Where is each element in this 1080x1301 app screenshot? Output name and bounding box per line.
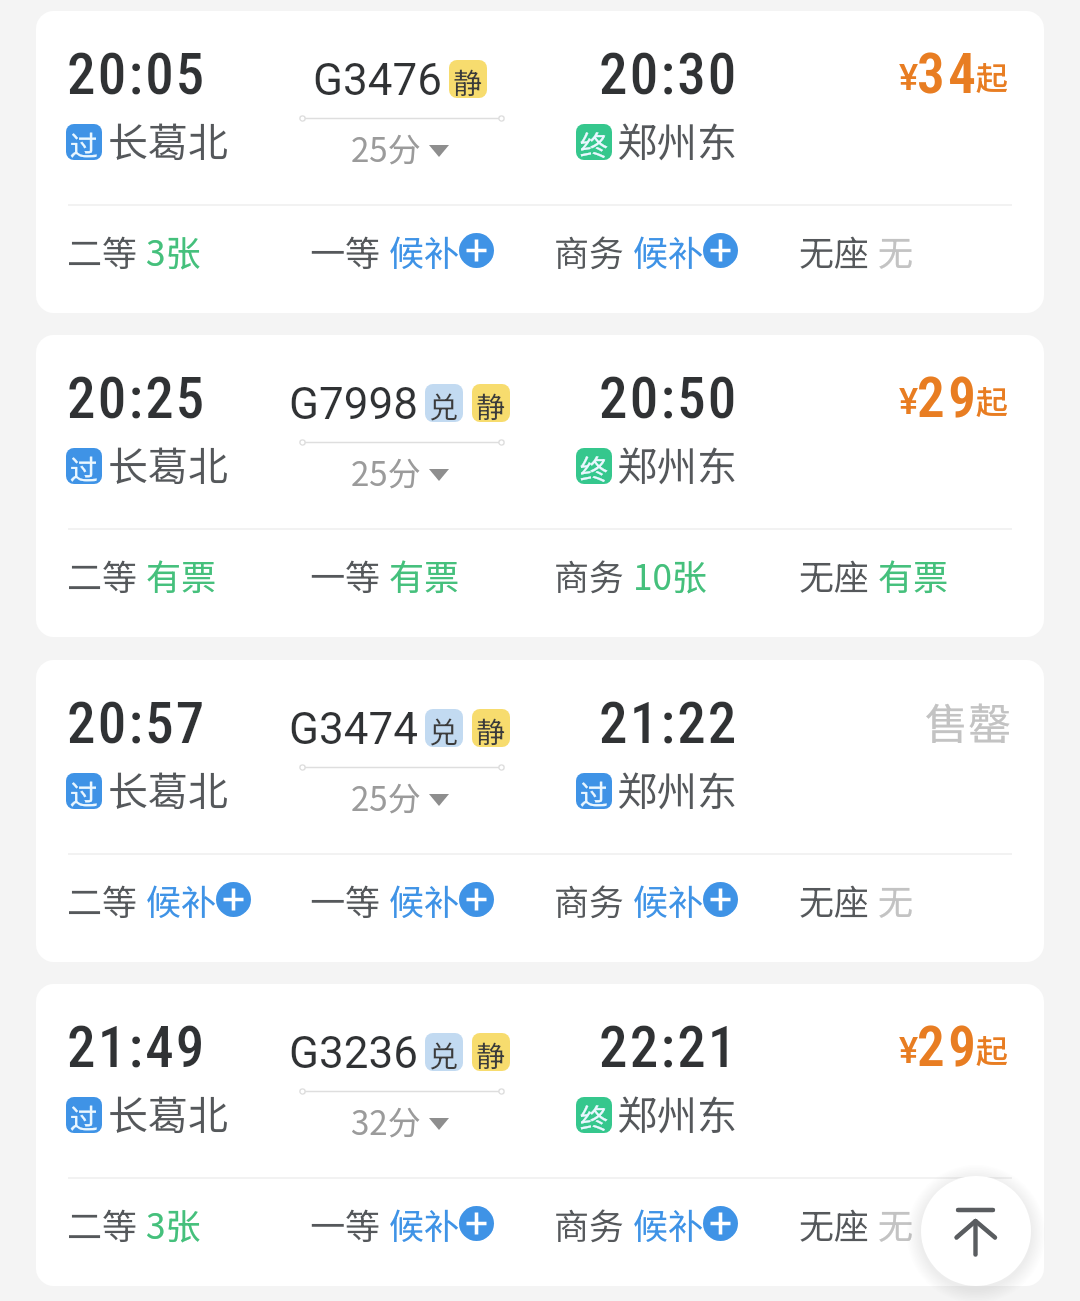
staticText: 候补 [389,874,460,925]
staticText: 25分 [351,124,421,172]
button[interactable]: Back to top [921,1176,1031,1286]
staticText: ¥ [899,1030,919,1072]
staticText: 起 [976,1026,1009,1072]
staticText: 候补 [146,874,217,925]
staticText: 售罄 [925,690,1011,752]
staticText: 22:21 [599,1014,739,1081]
staticText: 20:05 [67,41,207,108]
staticText: 长葛北 [108,1084,228,1142]
staticText: 29 [917,1015,980,1079]
staticText: 郑州东 [617,1084,737,1142]
staticText: 商务 [554,1198,625,1249]
staticText: 一等 [310,549,381,600]
staticText: 无 [878,874,914,925]
staticText: 3张 [146,1198,201,1249]
staticText: 20:30 [599,41,739,108]
staticText: 过 [70,773,99,809]
staticText: 商务 [554,874,625,925]
staticText: 21:22 [599,690,739,757]
staticText: ¥ [899,57,919,99]
staticText: 兑 [429,384,459,422]
staticText: 34 [917,42,980,106]
staticText: 无座 [799,225,870,276]
staticText: G3474 [289,703,418,755]
staticText: 一等 [310,874,381,925]
staticText: 郑州东 [617,435,737,493]
button[interactable]: 20:57 [36,660,1044,962]
staticText: 终 [580,1097,609,1133]
staticText: 兑 [429,1033,459,1071]
staticText: 候补 [389,1198,460,1249]
staticText: 20:57 [67,690,207,757]
staticText: 二等 [67,549,138,600]
staticText: 过 [70,448,99,484]
staticText: 长葛北 [108,111,228,169]
staticText: 20:25 [67,365,207,432]
staticText: 过 [70,124,99,160]
staticText: 终 [580,124,609,160]
staticText: 20:50 [599,365,739,432]
button[interactable]: 21:49 [36,984,1044,1286]
staticText: 候补 [633,1198,704,1249]
staticText: ¥ [899,381,919,423]
staticText: 有票 [146,549,217,600]
staticText: 有票 [389,549,460,600]
staticText: 无座 [799,1198,870,1249]
staticText: 静 [476,1033,506,1071]
staticText: 商务 [554,225,625,276]
staticText: G3476 [313,54,442,106]
staticText: G3236 [289,1027,418,1079]
staticText: 郑州东 [617,760,737,818]
staticText: 商务 [554,549,625,600]
button[interactable]: 20:05 [36,11,1044,313]
staticText: 候补 [633,874,704,925]
staticText: 29 [917,366,980,430]
staticText: 二等 [67,874,138,925]
staticText: 无 [878,225,914,276]
staticText: 21:49 [67,1014,207,1081]
staticText: 3张 [146,225,201,276]
staticText: 无 [878,1198,914,1249]
staticText: 25分 [351,773,421,821]
staticText: 终 [580,448,609,484]
staticText: 一等 [310,225,381,276]
staticText: 静 [476,384,506,422]
staticText: 二等 [67,1198,138,1249]
staticText: 有票 [878,549,949,600]
staticText: 过 [70,1097,99,1133]
staticText: 候补 [389,225,460,276]
staticText: 候补 [633,225,704,276]
staticText: 静 [453,60,483,98]
staticText: 无座 [799,549,870,600]
staticText: 郑州东 [617,111,737,169]
staticText: 静 [476,709,506,747]
staticText: 32分 [351,1097,421,1145]
staticText: 过 [580,773,609,809]
staticText: 起 [976,377,1009,423]
staticText: 25分 [351,448,421,496]
staticText: 起 [976,53,1009,99]
staticText: 无座 [799,874,870,925]
staticText: 兑 [429,709,459,747]
staticText: 长葛北 [108,435,228,493]
staticText: 长葛北 [108,760,228,818]
staticText: G7998 [289,378,418,430]
staticText: 一等 [310,1198,381,1249]
staticText: 10张 [633,549,707,600]
staticText: 二等 [67,225,138,276]
button[interactable]: 20:25 [36,335,1044,637]
